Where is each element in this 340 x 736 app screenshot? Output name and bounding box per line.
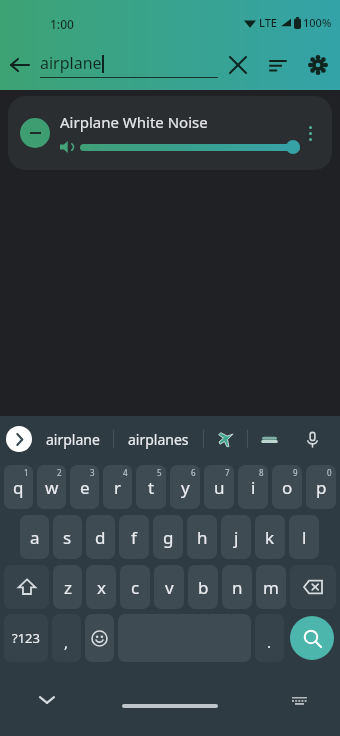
staticText: p bbox=[316, 476, 327, 499]
staticText: Airplane White Noise bbox=[60, 112, 208, 132]
button[interactable]: l bbox=[289, 515, 319, 559]
button[interactable]: Voice input bbox=[291, 431, 334, 448]
staticText: . bbox=[267, 632, 272, 652]
staticText: LTE bbox=[259, 15, 277, 30]
button[interactable]: i bbox=[238, 465, 268, 509]
staticText: g bbox=[163, 526, 174, 549]
button[interactable]: o bbox=[272, 465, 302, 509]
staticText: 0 bbox=[327, 467, 332, 478]
button[interactable]: q bbox=[4, 465, 33, 509]
button[interactable]: Remove bbox=[20, 118, 50, 148]
button[interactable]: k bbox=[255, 515, 285, 559]
staticText: f bbox=[131, 526, 137, 549]
button[interactable]: h bbox=[187, 515, 217, 559]
staticText: o bbox=[282, 476, 293, 499]
button[interactable]: f bbox=[119, 515, 149, 559]
staticText: 9 bbox=[293, 467, 298, 478]
staticText: k bbox=[265, 526, 275, 549]
staticText: 3 bbox=[90, 467, 95, 478]
staticText: s bbox=[63, 526, 72, 549]
staticText: 2 bbox=[57, 467, 62, 478]
staticText: 7 bbox=[225, 467, 230, 478]
staticText: , bbox=[64, 632, 69, 652]
button[interactable]: Sort bbox=[258, 45, 298, 85]
staticText: m bbox=[263, 576, 279, 599]
button[interactable]: u bbox=[204, 465, 234, 509]
staticText: 4 bbox=[123, 467, 128, 478]
button[interactable]: Emoji keyboard bbox=[85, 614, 114, 662]
button[interactable]: y bbox=[170, 465, 200, 509]
staticText: r bbox=[114, 476, 122, 499]
button[interactable]: Airplane emoji bbox=[204, 431, 247, 448]
staticText: j bbox=[234, 526, 239, 549]
button[interactable]: Shift bbox=[4, 565, 49, 609]
button[interactable]: Search bbox=[290, 616, 334, 660]
button[interactable]: Back bbox=[0, 45, 40, 85]
staticText: x bbox=[97, 576, 106, 599]
staticText: w bbox=[45, 476, 59, 499]
button[interactable]: g bbox=[153, 515, 183, 559]
staticText: z bbox=[64, 576, 72, 599]
button[interactable]: Backspace bbox=[290, 565, 336, 609]
button[interactable]: Clear bbox=[218, 45, 258, 85]
staticText: u bbox=[214, 476, 225, 499]
button[interactable]: airplanes bbox=[114, 430, 203, 449]
button[interactable]: . bbox=[255, 614, 284, 662]
button[interactable]: airplane bbox=[32, 430, 113, 449]
staticText: ?123 bbox=[12, 629, 40, 647]
button[interactable]: Settings bbox=[298, 45, 338, 85]
staticText: c bbox=[131, 576, 140, 599]
staticText: airplanes bbox=[128, 430, 189, 449]
button[interactable]: More options bbox=[296, 119, 324, 147]
button[interactable]: p bbox=[306, 465, 336, 509]
button[interactable]: j bbox=[221, 515, 251, 559]
button[interactable]: e bbox=[70, 465, 99, 509]
staticText: d bbox=[95, 526, 106, 549]
staticText: b bbox=[198, 576, 209, 599]
button[interactable]: r bbox=[103, 465, 132, 509]
button[interactable]: Switch keyboard bbox=[286, 687, 312, 713]
staticText: 100% bbox=[303, 15, 332, 30]
button[interactable]: z bbox=[53, 565, 82, 609]
button[interactable]: b bbox=[188, 565, 218, 609]
staticText: t bbox=[148, 476, 155, 499]
staticText: n bbox=[232, 576, 243, 599]
button[interactable]: More suggestions bbox=[6, 426, 32, 452]
button[interactable]: a bbox=[20, 515, 49, 559]
staticText: v bbox=[165, 576, 174, 599]
button[interactable]: x bbox=[86, 565, 116, 609]
staticText: 6 bbox=[191, 467, 196, 478]
staticText: l bbox=[302, 526, 307, 549]
button[interactable]: Remove bbox=[8, 96, 332, 170]
staticText: airplane bbox=[40, 52, 102, 74]
staticText: h bbox=[197, 526, 208, 549]
staticText: airplane bbox=[46, 430, 100, 449]
button[interactable]: Emoji bbox=[248, 431, 291, 448]
button[interactable]: d bbox=[86, 515, 115, 559]
staticText: e bbox=[80, 476, 90, 499]
button[interactable]: , bbox=[52, 614, 81, 662]
staticText: 1 bbox=[24, 467, 29, 478]
button[interactable]: Hide keyboard bbox=[34, 687, 60, 713]
staticText: 5 bbox=[157, 467, 162, 478]
button[interactable]: c bbox=[120, 565, 150, 609]
button[interactable]: w bbox=[37, 465, 66, 509]
button[interactable]: s bbox=[53, 515, 82, 559]
staticText: a bbox=[30, 526, 40, 549]
button[interactable]: t bbox=[136, 465, 166, 509]
staticText: 1:00 bbox=[50, 16, 74, 32]
staticText: y bbox=[181, 476, 190, 499]
staticText: 8 bbox=[259, 467, 264, 478]
staticText: i bbox=[251, 476, 256, 499]
button[interactable]: m bbox=[256, 565, 286, 609]
button[interactable]: n bbox=[222, 565, 252, 609]
staticText: q bbox=[13, 476, 24, 499]
button[interactable]: ?123 bbox=[4, 614, 48, 662]
button[interactable]: v bbox=[154, 565, 184, 609]
